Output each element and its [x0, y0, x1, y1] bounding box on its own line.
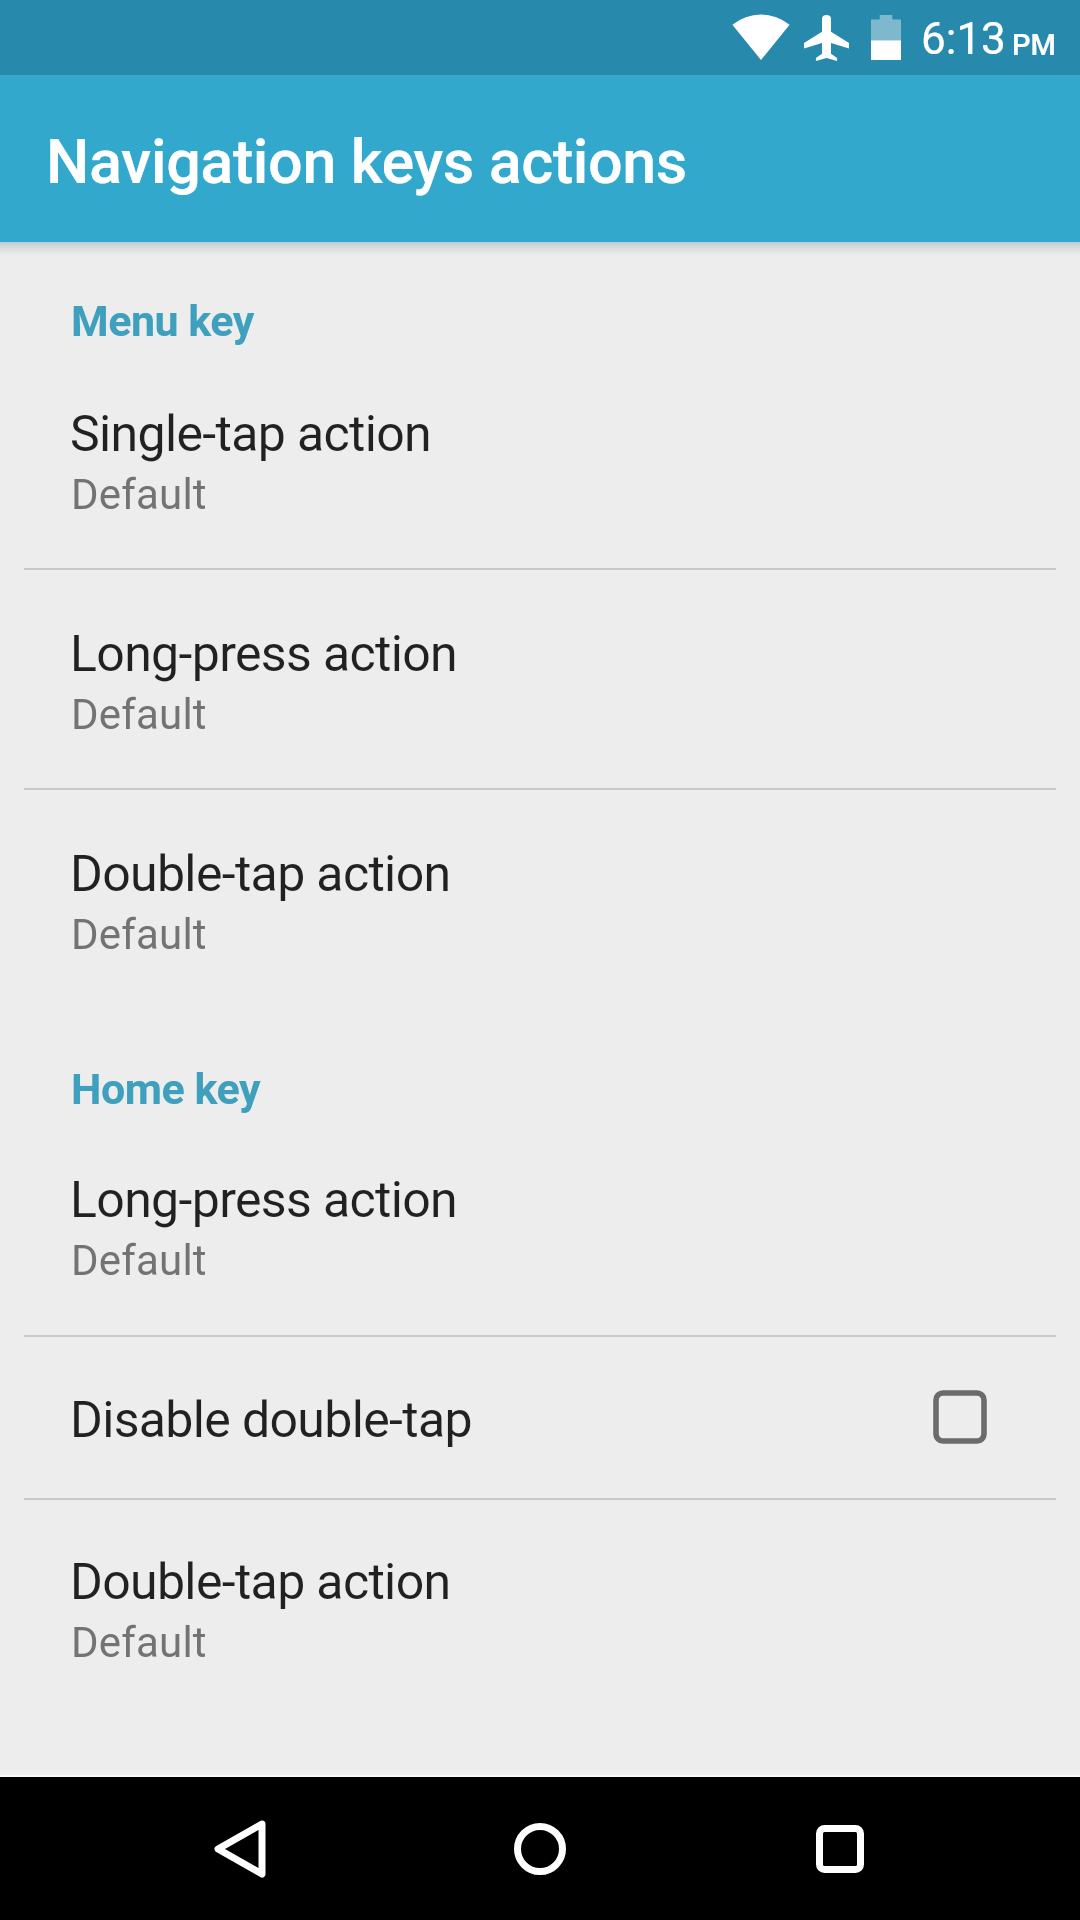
staticText: Default	[71, 470, 207, 520]
staticText: Double-tap action	[70, 1552, 451, 1611]
button[interactable]: Home	[480, 1777, 600, 1920]
button[interactable]: Double-tap action	[0, 1500, 1080, 1720]
button[interactable]: Recent apps	[780, 1777, 900, 1920]
staticText: Single-tap action	[70, 404, 432, 463]
staticText: Double-tap action	[70, 844, 451, 903]
staticText: Navigation keys actions	[46, 126, 687, 198]
staticText: Default	[71, 1236, 207, 1286]
staticText: Default	[71, 910, 207, 960]
button[interactable]: Double-tap action	[0, 790, 1080, 1008]
staticText: 6:13	[921, 13, 1006, 65]
button[interactable]: Long-press action	[0, 1128, 1080, 1335]
staticText: Disable double-tap	[70, 1390, 472, 1449]
staticText: PM	[1012, 28, 1056, 62]
button[interactable]: Back	[180, 1777, 300, 1920]
staticText: Default	[71, 1618, 207, 1668]
staticText: Default	[71, 690, 207, 740]
staticText: Long-press action	[70, 1170, 457, 1229]
button[interactable]: Single-tap action	[0, 360, 1080, 568]
staticText: Long-press action	[70, 624, 457, 683]
button[interactable]: Disable double-tap	[0, 1337, 1080, 1498]
button[interactable]: Long-press action	[0, 570, 1080, 788]
staticText: Home key	[71, 1064, 261, 1115]
staticText: Menu key	[71, 296, 254, 347]
